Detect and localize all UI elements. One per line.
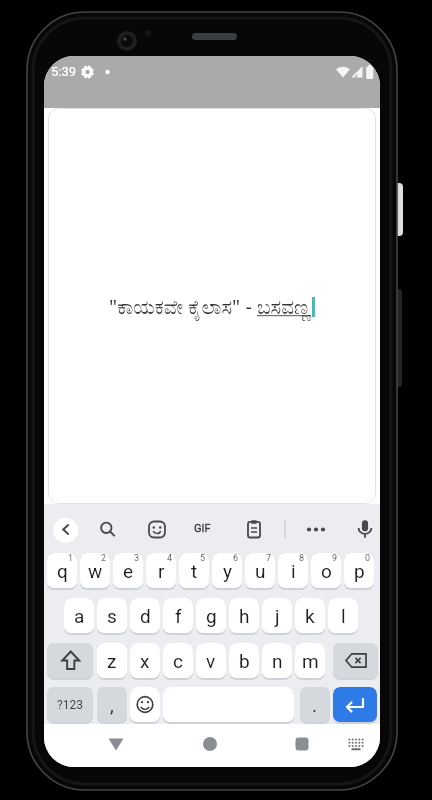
button[interactable] <box>93 515 123 545</box>
staticText: 5:39 <box>51 64 77 79</box>
button[interactable]: a <box>64 598 94 635</box>
staticText: k <box>305 605 315 627</box>
staticText: q <box>57 560 68 582</box>
staticText: 4 <box>167 553 173 564</box>
button[interactable]: z <box>97 643 127 680</box>
staticText: 9 <box>332 553 338 564</box>
staticText: x <box>140 650 150 672</box>
button[interactable]: h <box>229 598 259 635</box>
staticText: g <box>206 605 217 627</box>
button[interactable]: ?123 <box>47 687 93 724</box>
button[interactable]: n <box>262 643 292 680</box>
button[interactable]: m <box>295 643 325 680</box>
staticText: s <box>107 605 117 627</box>
button[interactable]: d <box>130 598 160 635</box>
staticText: . <box>312 694 318 716</box>
staticText: p <box>354 560 365 582</box>
staticText: 8 <box>299 553 305 564</box>
staticText: i <box>291 560 296 582</box>
button[interactable] <box>194 728 226 760</box>
staticText: , <box>110 694 114 716</box>
button[interactable]: "ಕಾಯಕವೇ ಕೈಲಾಸ" - ಬಸವಣ್ಣ <box>48 108 376 504</box>
staticText: l <box>341 605 346 627</box>
staticText: r <box>158 560 165 582</box>
staticText: 0 <box>365 553 371 564</box>
button[interactable]: c <box>163 643 193 680</box>
button[interactable] <box>100 728 132 760</box>
staticText: 5 <box>200 553 206 564</box>
staticText: v <box>206 650 216 672</box>
staticText: "ಕಾಯಕವೇ ಕೈಲಾಸ" - ಬಸವಣ್ಣ <box>109 293 312 320</box>
staticText: d <box>140 605 151 627</box>
button[interactable]: s <box>97 598 127 635</box>
button[interactable]: b <box>229 643 259 680</box>
button[interactable] <box>130 687 160 724</box>
staticText: 3 <box>134 553 140 564</box>
button[interactable]: j <box>262 598 292 635</box>
staticText: 6 <box>233 553 239 564</box>
button[interactable] <box>163 687 294 724</box>
button[interactable] <box>190 515 220 545</box>
button[interactable]: l <box>328 598 358 635</box>
button[interactable]: o <box>311 553 341 590</box>
button[interactable]: f <box>163 598 193 635</box>
button[interactable] <box>340 728 372 760</box>
staticText: u <box>255 560 266 582</box>
button[interactable]: k <box>295 598 325 635</box>
button[interactable] <box>286 728 318 760</box>
button[interactable] <box>350 515 380 545</box>
button[interactable] <box>142 515 172 545</box>
button[interactable]: . <box>300 687 330 724</box>
button[interactable]: q <box>47 553 77 590</box>
staticText: h <box>239 605 250 627</box>
staticText: z <box>107 650 117 672</box>
staticText: o <box>321 560 332 582</box>
staticText: t <box>191 560 198 582</box>
button[interactable]: g <box>196 598 226 635</box>
staticText: w <box>88 560 103 582</box>
staticText: e <box>123 560 134 582</box>
button[interactable]: i <box>278 553 308 590</box>
staticText: f <box>175 605 182 627</box>
button[interactable] <box>47 643 93 680</box>
button[interactable]: t <box>179 553 209 590</box>
staticText: a <box>74 605 85 627</box>
staticText: b <box>239 650 250 672</box>
button[interactable] <box>333 687 377 724</box>
button[interactable] <box>301 515 331 545</box>
staticText: c <box>173 650 183 672</box>
button[interactable] <box>53 518 78 543</box>
button[interactable] <box>333 643 378 680</box>
staticText: 7 <box>266 553 272 564</box>
button[interactable] <box>239 515 269 545</box>
button[interactable]: p <box>344 553 374 590</box>
staticText: m <box>302 650 319 672</box>
button[interactable]: u <box>245 553 275 590</box>
staticText: j <box>275 605 280 627</box>
staticText: n <box>272 650 283 672</box>
button[interactable]: e <box>113 553 143 590</box>
button[interactable]: w <box>80 553 110 590</box>
button[interactable]: y <box>212 553 242 590</box>
staticText: GIF <box>194 522 211 535</box>
button[interactable]: , <box>97 687 127 724</box>
staticText: 1 <box>68 553 74 564</box>
staticText: y <box>223 560 232 582</box>
button[interactable]: r <box>146 553 176 590</box>
button[interactable]: v <box>196 643 226 680</box>
staticText: 2 <box>101 553 107 564</box>
staticText: ?123 <box>57 698 83 712</box>
button[interactable]: x <box>130 643 160 680</box>
